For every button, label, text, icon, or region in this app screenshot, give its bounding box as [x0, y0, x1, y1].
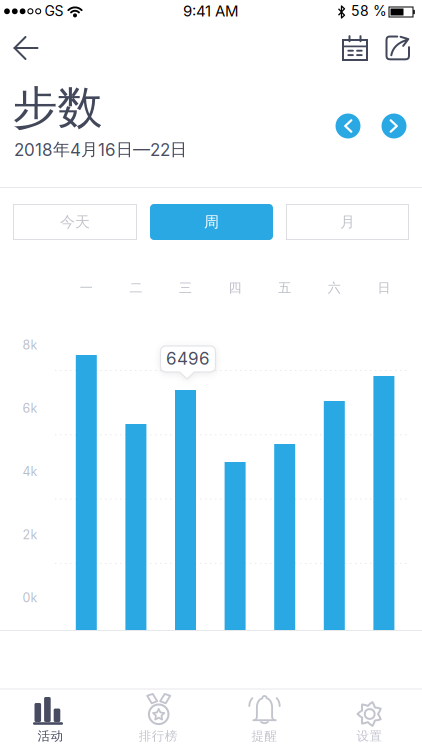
button[interactable]: 月 — [286, 204, 409, 240]
staticText: 活动 — [37, 728, 63, 744]
staticText: 日 — [377, 280, 390, 296]
staticText: 二 — [129, 280, 142, 296]
staticText: 提醒 — [251, 728, 277, 744]
staticText: 58 % — [351, 2, 387, 19]
staticText: 2018年4月16日—22日 — [14, 139, 187, 160]
staticText: 月 — [340, 213, 355, 231]
staticText: 周 — [204, 213, 219, 231]
staticText: 6496 — [166, 348, 210, 369]
staticText: 4k — [22, 464, 37, 479]
staticText: 六 — [328, 280, 341, 296]
staticText: 6k — [22, 401, 37, 416]
staticText: 一 — [80, 280, 93, 296]
button[interactable]: 提醒 — [211, 689, 316, 750]
staticText: 设置 — [356, 728, 382, 744]
button[interactable]: 排行榜 — [105, 689, 211, 750]
staticText: 2k — [22, 527, 37, 542]
staticText: 0k — [22, 590, 37, 605]
staticText: 五 — [278, 280, 291, 296]
button[interactable] — [8, 31, 44, 65]
staticText: 四 — [229, 280, 242, 296]
button[interactable] — [335, 113, 360, 138]
staticText: GS — [44, 2, 63, 19]
button[interactable]: 周 — [150, 204, 273, 240]
button[interactable] — [338, 31, 372, 65]
staticText: 今天 — [60, 213, 90, 231]
staticText: 排行榜 — [139, 728, 178, 744]
button[interactable]: 设置 — [316, 689, 422, 750]
staticText: 9:41 AM — [183, 2, 239, 20]
button[interactable] — [381, 113, 406, 138]
staticText: 步数 — [12, 80, 102, 136]
button[interactable] — [380, 31, 414, 65]
button[interactable]: 活动 — [0, 689, 105, 750]
staticText: 8k — [22, 337, 37, 352]
staticText: 三 — [179, 280, 192, 296]
button[interactable]: 今天 — [13, 204, 137, 240]
